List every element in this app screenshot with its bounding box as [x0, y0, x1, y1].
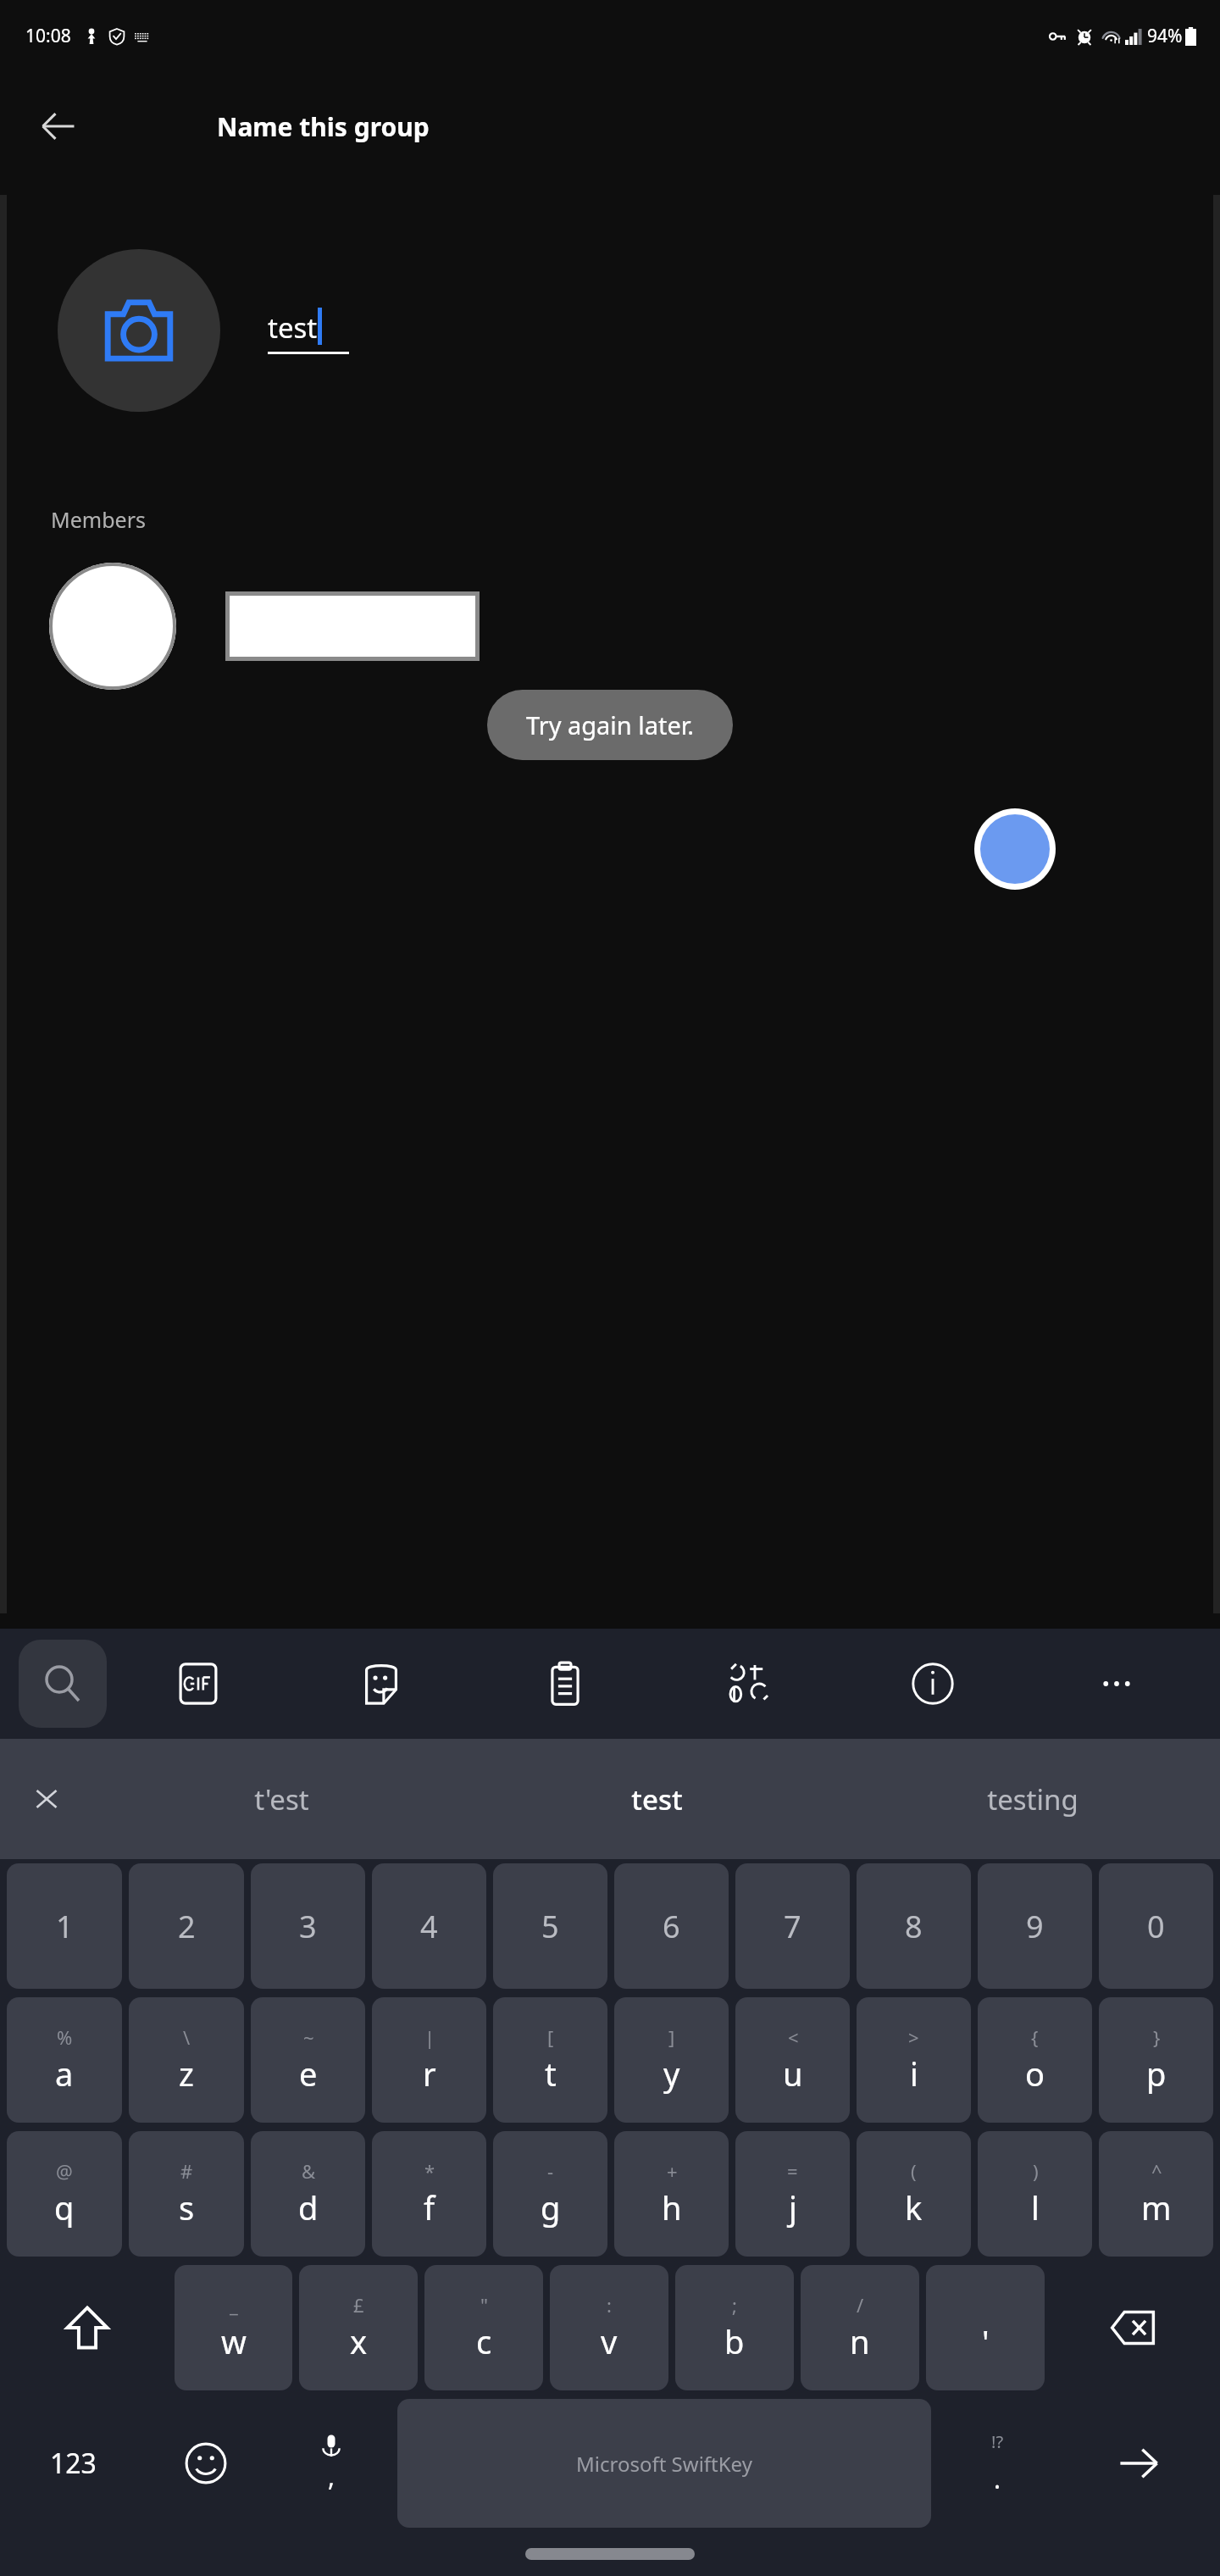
button[interactable]: 6: [614, 1863, 729, 1989]
button[interactable]: ": [424, 2265, 543, 2390]
button[interactable]: <: [735, 1997, 850, 2123]
staticText: [: [547, 2024, 554, 2050]
button[interactable]: }: [1099, 1997, 1213, 2123]
button[interactable]: Search: [19, 1640, 107, 1728]
button[interactable]: Voice input: [269, 2399, 394, 2528]
button[interactable]: >: [857, 1997, 971, 2123]
button[interactable]: &: [251, 2131, 365, 2257]
button[interactable]: Member avatar: [49, 563, 176, 690]
staticText: {: [1031, 2024, 1039, 2050]
staticText: l: [1031, 2185, 1040, 2229]
button[interactable]: Info: [840, 1629, 1024, 1739]
button[interactable]: 4: [372, 1863, 486, 1989]
staticText: k: [905, 2185, 923, 2229]
staticText: r: [423, 2051, 436, 2096]
staticText: j: [789, 2185, 797, 2229]
button[interactable]: 5: [493, 1863, 607, 1989]
button[interactable]: Enter: [1060, 2399, 1217, 2528]
staticText: Microsoft SwiftKey: [576, 2450, 752, 2478]
button[interactable]: !?: [934, 2399, 1060, 2528]
button[interactable]: £: [299, 2265, 418, 2390]
staticText: 3: [299, 1906, 317, 1947]
button[interactable]: Back: [32, 100, 85, 153]
staticText: y: [663, 2051, 680, 2096]
staticText: 10:08: [25, 24, 71, 48]
button[interactable]: 123: [3, 2399, 142, 2528]
button[interactable]: ]: [614, 1997, 729, 2123]
staticText: /: [857, 2292, 864, 2318]
button[interactable]: (: [857, 2131, 971, 2257]
button[interactable]: 2: [129, 1863, 244, 1989]
button[interactable]: +: [614, 2131, 729, 2257]
button[interactable]: #: [129, 2131, 244, 2257]
staticText: @: [56, 2158, 73, 2184]
button[interactable]: Shift: [3, 2265, 171, 2390]
button[interactable]: t'est: [93, 1739, 469, 1859]
staticText: Try again later.: [526, 708, 694, 741]
staticText: b: [724, 2319, 745, 2363]
button[interactable]: @: [7, 2131, 122, 2257]
button[interactable]: Backspace: [1048, 2265, 1217, 2390]
staticText: *: [424, 2158, 435, 2184]
button[interactable]: 1: [7, 1863, 122, 1989]
button[interactable]: -: [493, 2131, 607, 2257]
button[interactable]: \: [129, 1997, 244, 2123]
button[interactable]: More options: [1024, 1629, 1208, 1739]
button[interactable]: 7: [735, 1863, 850, 1989]
staticText: p: [1146, 2051, 1167, 2096]
button[interactable]: ': [926, 2265, 1045, 2390]
staticText: ": [480, 2292, 488, 2318]
staticText: 6: [663, 1906, 680, 1947]
button[interactable]: [: [493, 1997, 607, 2123]
staticText: g: [541, 2185, 561, 2229]
staticText: m: [1141, 2185, 1172, 2229]
staticText: 9: [1026, 1906, 1044, 1947]
staticText: v: [601, 2319, 618, 2363]
button[interactable]: Add group photo: [58, 249, 220, 412]
staticText: \: [183, 2024, 191, 2050]
button[interactable]: 9: [978, 1863, 1092, 1989]
button[interactable]: ): [978, 2131, 1092, 2257]
button[interactable]: _: [175, 2265, 292, 2390]
button[interactable]: 8: [857, 1863, 971, 1989]
staticText: }: [1153, 2024, 1161, 2050]
button[interactable]: =: [735, 2131, 850, 2257]
button[interactable]: ;: [675, 2265, 794, 2390]
button[interactable]: |: [372, 1997, 486, 2123]
staticText: >: [908, 2024, 919, 2050]
button[interactable]: Translate: [657, 1629, 840, 1739]
staticText: c: [476, 2319, 492, 2363]
button[interactable]: Microsoft SwiftKey: [397, 2399, 931, 2528]
staticText: -: [547, 2158, 554, 2184]
button[interactable]: {: [978, 1997, 1092, 2123]
button[interactable]: test: [469, 1739, 845, 1859]
staticText: e: [299, 2051, 318, 2096]
button[interactable]: /: [801, 2265, 919, 2390]
button[interactable]: ^: [1099, 2131, 1213, 2257]
staticText: t: [545, 2051, 557, 2096]
button[interactable]: testing: [845, 1739, 1220, 1859]
button[interactable]: GIF: [107, 1629, 290, 1739]
staticText: 94%: [1147, 24, 1183, 48]
staticText: !?: [991, 2430, 1004, 2453]
button[interactable]: Clipboard: [473, 1629, 657, 1739]
button[interactable]: Stickers: [290, 1629, 473, 1739]
button[interactable]: 3: [251, 1863, 365, 1989]
staticText: t'est: [254, 1780, 309, 1818]
button[interactable]: Create group: [980, 814, 1050, 884]
staticText: s: [179, 2185, 195, 2229]
button[interactable]: %: [7, 1997, 122, 2123]
staticText: 7: [784, 1906, 801, 1947]
staticText: w: [221, 2319, 247, 2363]
staticText: u: [783, 2051, 803, 2096]
button[interactable]: 0: [1099, 1863, 1213, 1989]
staticText: =: [787, 2158, 798, 2184]
staticText: #: [180, 2158, 193, 2184]
staticText: 8: [905, 1906, 923, 1947]
button[interactable]: Emoji: [142, 2399, 269, 2528]
button[interactable]: ~: [251, 1997, 365, 2123]
button[interactable]: Close suggestions: [0, 1739, 93, 1859]
button[interactable]: *: [372, 2131, 486, 2257]
button[interactable]: :: [550, 2265, 668, 2390]
staticText: £: [353, 2292, 364, 2318]
